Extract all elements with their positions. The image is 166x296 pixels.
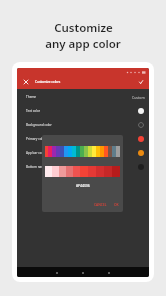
button[interactable]: Theme <box>17 90 149 104</box>
button[interactable]: Primary color <box>17 132 149 146</box>
button[interactable]: Close <box>21 77 30 86</box>
button[interactable]: Apply <box>136 77 145 86</box>
staticText: #F44336 <box>76 183 90 188</box>
button[interactable]: CANCEL <box>93 200 108 208</box>
staticText: Customize <box>54 20 113 36</box>
button[interactable]: Recents <box>105 269 112 276</box>
button[interactable]: Bottom navigation color <box>17 160 149 174</box>
button[interactable]: Home <box>79 269 86 276</box>
button[interactable]: OK <box>113 200 120 208</box>
button[interactable]: Background color <box>17 118 149 132</box>
staticText: Custom <box>132 95 145 100</box>
staticText: Customize colors <box>35 80 61 84</box>
staticText: OK <box>114 202 119 206</box>
button[interactable]: Back <box>53 269 60 276</box>
staticText: any app color <box>45 36 121 52</box>
staticText: Theme <box>26 95 37 99</box>
staticText: Primary color <box>26 137 46 141</box>
staticText: Bottom navigation color <box>26 165 62 169</box>
staticText: CANCEL <box>94 202 107 206</box>
button[interactable]: Text color <box>17 104 149 118</box>
staticText: Text color <box>26 109 41 113</box>
staticText: Background color <box>26 123 52 127</box>
button[interactable]: App bar color <box>17 146 149 160</box>
staticText: App bar color <box>26 151 46 155</box>
